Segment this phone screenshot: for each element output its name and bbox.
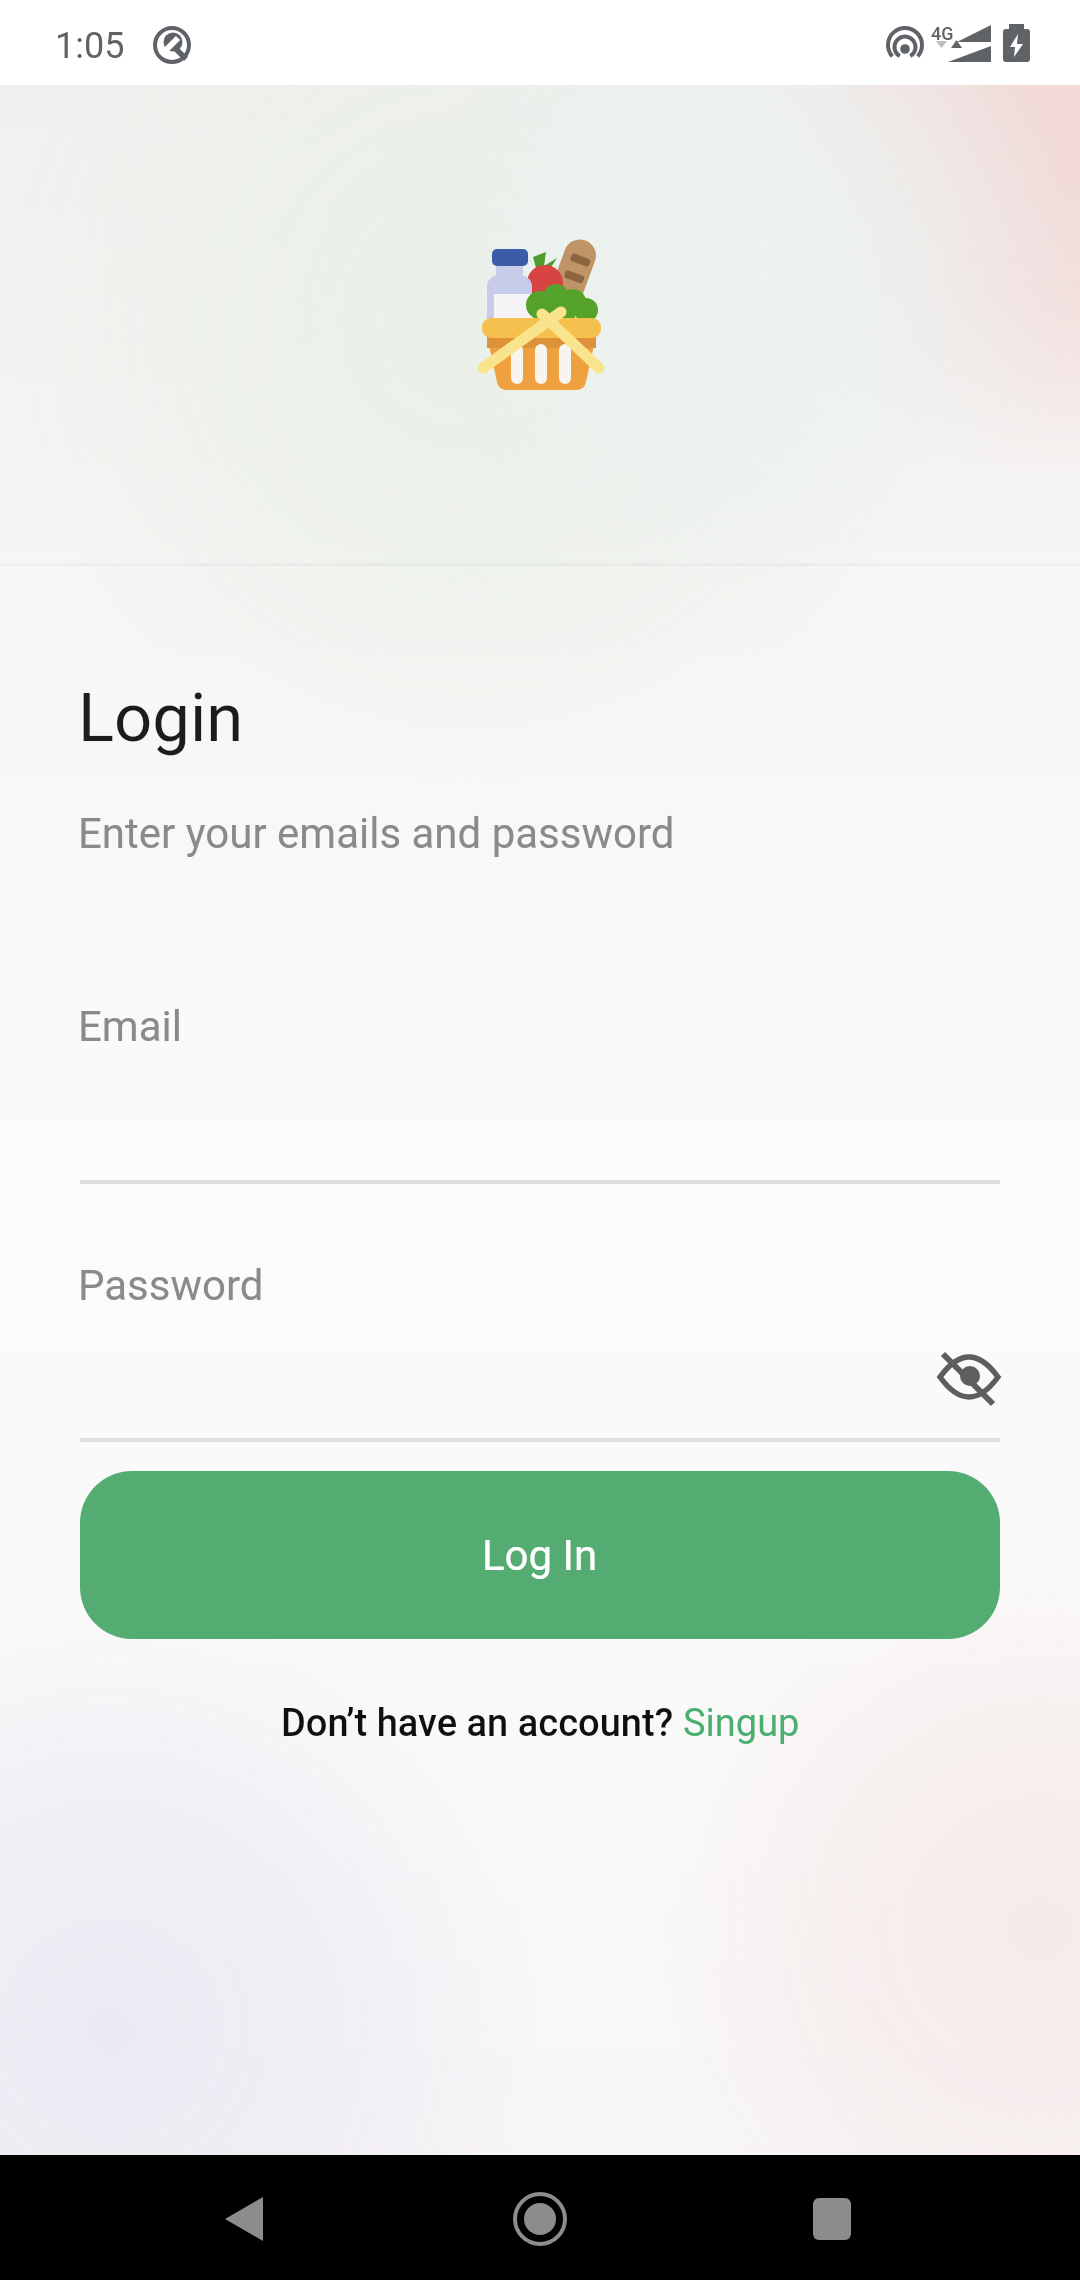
staticText: 4G xyxy=(931,23,954,44)
staticText: Email xyxy=(78,1002,182,1051)
staticText: Password xyxy=(78,1261,264,1310)
button[interactable] xyxy=(205,2180,285,2260)
staticText: Enter your emails and password xyxy=(78,809,675,858)
staticText: Login xyxy=(78,679,244,758)
staticText: Don’t have an account? xyxy=(281,1701,683,1746)
button[interactable] xyxy=(792,2180,872,2260)
button[interactable] xyxy=(500,2180,580,2260)
staticText: Singup xyxy=(683,1701,800,1746)
staticText: 1:05 xyxy=(55,25,125,67)
button[interactable] xyxy=(930,1345,1006,1411)
button[interactable]: Log In xyxy=(80,1471,1000,1639)
button[interactable] xyxy=(80,1056,1000,1184)
staticText: Log In xyxy=(482,1531,598,1580)
button[interactable] xyxy=(80,1315,920,1442)
button[interactable]: Don’t have an account? xyxy=(281,1701,800,1746)
